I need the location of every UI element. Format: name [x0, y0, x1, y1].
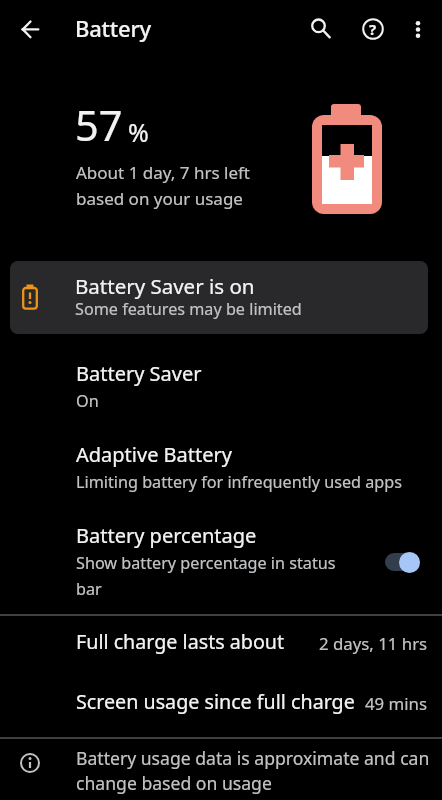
staticText: On [76, 390, 99, 412]
button[interactable]: Battery percentage [0, 508, 442, 614]
button[interactable] [10, 10, 50, 50]
staticText: Show battery percentage in status bar [76, 552, 336, 599]
staticText: ? [369, 19, 377, 39]
staticText: Battery usage data is approximate and ca… [76, 746, 430, 795]
staticText: 2 days, 11 hrs [319, 632, 428, 655]
staticText: Some features may be limited [75, 298, 302, 320]
staticText: Battery Saver is on [75, 272, 255, 300]
button[interactable]: Battery Saver [0, 346, 442, 427]
staticText: Battery Saver [76, 360, 202, 387]
staticText: About 1 day, 7 hrs left based on your us… [76, 161, 250, 210]
button[interactable]: Full charge lasts about [0, 616, 442, 676]
button[interactable]: Battery Saver is on [10, 261, 428, 334]
staticText: Battery [75, 13, 151, 43]
button[interactable] [399, 552, 420, 573]
button[interactable] [301, 10, 341, 50]
button[interactable]: ? [353, 9, 393, 49]
button[interactable]: Screen usage since full charge [0, 676, 442, 736]
button[interactable]: Adaptive Battery [0, 427, 442, 508]
staticText: Adaptive Battery [76, 441, 233, 468]
staticText: Full charge lasts about [76, 628, 285, 655]
button[interactable] [398, 9, 438, 49]
staticText: 49 mins [365, 692, 428, 715]
staticText: Screen usage since full charge [76, 688, 355, 715]
staticText: 57 [75, 97, 123, 154]
staticText: Limiting battery for infrequently used a… [76, 471, 403, 493]
staticText: % [128, 115, 149, 149]
staticText: Battery percentage [76, 522, 257, 549]
